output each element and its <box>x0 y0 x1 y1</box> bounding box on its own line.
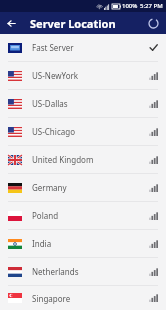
staticText: Fast Server <box>32 42 74 53</box>
button[interactable]: Germany <box>0 174 166 201</box>
staticText: Germany <box>32 182 67 193</box>
button[interactable]: US-Dallas <box>0 90 166 117</box>
staticText: United Kingdom <box>32 154 94 165</box>
staticText: US-Dallas <box>32 98 68 109</box>
staticText: US-NewYork <box>32 70 79 81</box>
button[interactable]: Fast Server <box>0 34 166 61</box>
button[interactable]: Back <box>3 15 19 31</box>
staticText: Server Location <box>30 16 116 31</box>
staticText: India <box>32 238 52 249</box>
button[interactable]: Netherlands <box>0 258 166 285</box>
button[interactable]: Refresh <box>144 14 162 32</box>
button[interactable]: US-Chicago <box>0 118 166 145</box>
staticText: 100% <box>122 2 138 10</box>
staticText: 5:27 PM <box>140 2 163 10</box>
button[interactable]: United Kingdom <box>0 146 166 173</box>
staticText: Netherlands <box>32 266 79 277</box>
button[interactable]: Singapore <box>0 286 166 310</box>
staticText: Poland <box>32 210 59 221</box>
staticText: US-Chicago <box>32 126 75 137</box>
staticText: Singapore <box>32 293 71 304</box>
button[interactable]: India <box>0 230 166 257</box>
button[interactable]: US-NewYork <box>0 62 166 89</box>
button[interactable]: Poland <box>0 202 166 229</box>
